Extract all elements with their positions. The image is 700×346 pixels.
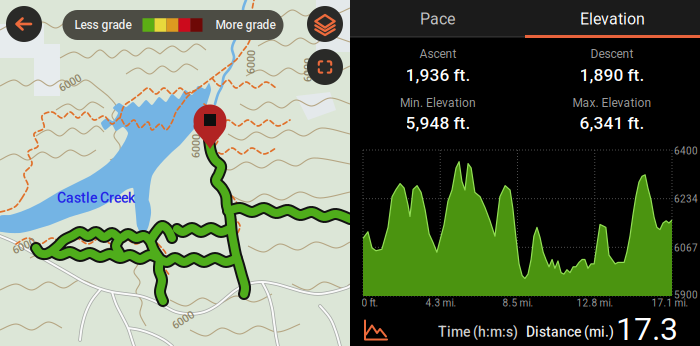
button[interactable]: Back bbox=[6, 6, 42, 42]
staticText: 17.3 bbox=[616, 310, 678, 346]
staticText: Max. Elevation bbox=[572, 96, 651, 110]
staticText: 6000 bbox=[171, 313, 195, 327]
staticText: 1,890 ft. bbox=[579, 65, 644, 85]
staticText: 6000 bbox=[296, 63, 320, 77]
staticText: 6067 bbox=[674, 242, 698, 254]
staticText: 6000 bbox=[239, 55, 263, 69]
staticText: Ascent bbox=[419, 47, 456, 61]
staticText: 17.1 mi. bbox=[651, 297, 688, 309]
staticText: Castle Creek bbox=[57, 190, 135, 206]
button[interactable]: Elevation bbox=[525, 0, 700, 38]
staticText: Distance (mi.) bbox=[526, 324, 614, 340]
button[interactable]: Chart bbox=[363, 318, 389, 341]
staticText: Time (h:m:s) bbox=[438, 324, 518, 340]
staticText: 6,341 ft. bbox=[579, 113, 644, 133]
staticText: 6234 bbox=[674, 193, 698, 205]
staticText: 6000 bbox=[58, 76, 82, 90]
staticText: 6000 bbox=[184, 139, 208, 153]
staticText: Pace bbox=[420, 10, 455, 28]
staticText: More grade bbox=[215, 18, 275, 32]
staticText: 5900 bbox=[674, 289, 698, 301]
button[interactable]: Map layers bbox=[307, 6, 343, 42]
staticText: Elevation bbox=[580, 10, 645, 28]
button[interactable]: Full screen bbox=[307, 49, 343, 85]
staticText: 5,948 ft. bbox=[405, 113, 470, 133]
staticText: 1,936 ft. bbox=[405, 65, 470, 85]
staticText: 6400 bbox=[674, 145, 698, 157]
staticText: 6000 bbox=[12, 239, 36, 253]
staticText: Min. Elevation bbox=[400, 96, 476, 110]
staticText: Descent bbox=[590, 47, 633, 61]
staticText: Less grade bbox=[74, 18, 131, 32]
staticText: 4.3 mi. bbox=[425, 297, 456, 309]
button[interactable]: Pace bbox=[350, 0, 525, 38]
staticText: 0 ft. bbox=[361, 297, 378, 309]
staticText: 8.5 mi. bbox=[502, 297, 533, 309]
staticText: 12.8 mi. bbox=[576, 297, 613, 309]
